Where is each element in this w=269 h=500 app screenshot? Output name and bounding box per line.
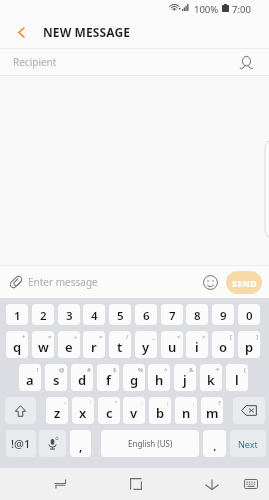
staticText: z — [54, 404, 61, 422]
button[interactable]: x — [72, 397, 94, 424]
button[interactable]: Add recipient — [235, 51, 257, 73]
button[interactable]: Home — [122, 471, 150, 497]
staticText: r — [91, 338, 97, 356]
button[interactable]: l — [226, 364, 248, 391]
staticText: 6 — [143, 308, 150, 324]
staticText: k — [207, 371, 215, 389]
button[interactable]: Backspace — [233, 397, 265, 424]
button[interactable]: Recipient — [0, 49, 269, 75]
button[interactable]: 5 — [109, 304, 131, 325]
button[interactable]: 8 — [186, 304, 208, 325]
staticText: 8 — [194, 308, 201, 324]
button[interactable]: o — [212, 331, 234, 358]
button[interactable]: m — [201, 397, 223, 424]
staticText: @ — [59, 366, 65, 374]
staticText: Next — [238, 438, 258, 450]
button[interactable]: n — [175, 397, 197, 424]
staticText: + — [22, 333, 26, 341]
staticText: ? — [218, 399, 221, 407]
staticText: , — [193, 399, 195, 407]
staticText: c — [106, 404, 113, 422]
staticText: " — [115, 399, 118, 407]
button[interactable]: 9 — [212, 304, 234, 325]
button[interactable]: Space — [101, 430, 199, 457]
staticText: ! — [37, 366, 39, 374]
button[interactable]: w — [32, 331, 54, 358]
button[interactable]: 3 — [58, 304, 80, 325]
staticText: o — [219, 338, 228, 356]
button[interactable]: . — [203, 430, 226, 457]
staticText: 100% — [194, 3, 219, 16]
button[interactable]: 4 — [83, 304, 105, 325]
button[interactable]: a — [19, 364, 41, 391]
button[interactable]: z — [46, 397, 68, 424]
staticText: 2 — [40, 308, 47, 324]
button[interactable]: Hide keyboard — [198, 471, 226, 497]
button[interactable]: 2 — [32, 304, 54, 325]
button[interactable]: t — [109, 331, 131, 358]
button[interactable]: 0 — [238, 304, 260, 325]
button[interactable]: Switch keyboard — [237, 471, 265, 497]
staticText: j — [183, 371, 187, 389]
button[interactable]: Symbols — [6, 430, 36, 457]
button[interactable]: e — [58, 331, 80, 358]
button[interactable]: Attach file — [3, 269, 29, 295]
staticText: _ — [152, 333, 155, 341]
button[interactable]: b — [149, 397, 171, 424]
button[interactable]: v — [123, 397, 145, 424]
button[interactable]: 1 — [6, 304, 28, 325]
staticText: Recipient — [13, 55, 57, 69]
button[interactable]: j — [174, 364, 196, 391]
button[interactable]: SEND — [226, 271, 262, 294]
button[interactable]: u — [161, 331, 183, 358]
staticText: $ — [113, 366, 117, 374]
button[interactable]: 6 — [135, 304, 157, 325]
staticText: × — [48, 333, 52, 341]
button[interactable]: g — [123, 364, 145, 391]
staticText: # — [87, 366, 91, 374]
staticText: = — [99, 333, 103, 341]
button[interactable]: h — [148, 364, 170, 391]
staticText: 5 — [117, 308, 124, 324]
button[interactable]: Voice input — [39, 430, 66, 457]
staticText: - — [64, 399, 66, 407]
staticText: English (US) — [128, 438, 173, 449]
staticText: n — [182, 404, 191, 422]
staticText: SEND — [232, 277, 257, 289]
button[interactable]: Recent apps — [46, 471, 74, 497]
staticText: f — [106, 371, 111, 389]
button[interactable]: Shift — [5, 397, 36, 424]
button[interactable]: s — [45, 364, 67, 391]
staticText: m — [206, 404, 219, 422]
staticText: i — [195, 338, 199, 356]
staticText: 7 — [169, 308, 176, 324]
button[interactable]: 7 — [161, 304, 183, 325]
button[interactable]: k — [200, 364, 222, 391]
staticText: !@1 — [11, 436, 31, 451]
staticText: & — [189, 366, 194, 374]
staticText: ^ — [164, 366, 168, 374]
button[interactable]: Emoji — [199, 271, 221, 293]
button[interactable]: d — [71, 364, 93, 391]
staticText: x — [79, 404, 87, 422]
staticText: ÷ — [74, 333, 78, 341]
button[interactable]: c — [98, 397, 120, 424]
staticText: NEW MESSAGE — [43, 24, 131, 40]
staticText: / — [126, 333, 129, 341]
staticText: e — [65, 338, 73, 356]
button[interactable]: q — [6, 331, 28, 358]
staticText: w — [38, 338, 49, 356]
button[interactable]: y — [135, 331, 157, 358]
button[interactable]: p — [238, 331, 260, 358]
button[interactable]: f — [97, 364, 119, 391]
button[interactable]: Back — [6, 16, 36, 48]
button[interactable]: , — [70, 430, 91, 457]
button[interactable]: i — [186, 331, 208, 358]
staticText: q — [13, 338, 22, 356]
staticText: g — [130, 371, 139, 389]
button[interactable]: r — [83, 331, 105, 358]
staticText: s — [53, 371, 60, 389]
button[interactable]: Next — [230, 430, 266, 457]
staticText: 7:00 — [232, 3, 251, 16]
staticText: ] — [256, 333, 258, 341]
